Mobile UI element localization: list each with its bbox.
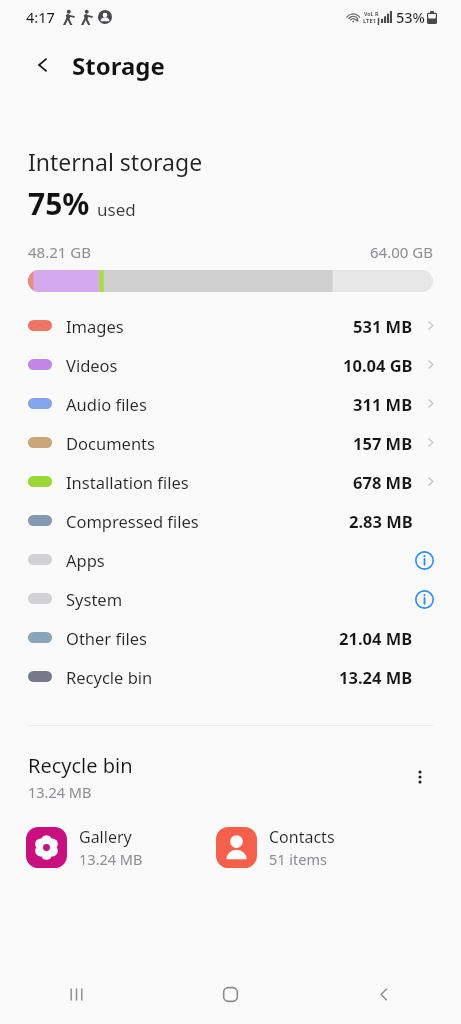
button[interactable]: Home bbox=[153, 964, 307, 1024]
staticText: Videos bbox=[66, 354, 118, 376]
staticText: R bbox=[375, 10, 379, 17]
button[interactable]: Gallery bbox=[26, 826, 216, 869]
button[interactable]: Contacts bbox=[216, 826, 343, 869]
staticText: used bbox=[97, 198, 136, 221]
button[interactable]: Images bbox=[0, 306, 461, 345]
staticText: 678 MB bbox=[353, 471, 413, 493]
button[interactable]: Recycle bin bbox=[0, 657, 461, 696]
staticText: 53% bbox=[396, 7, 425, 27]
button[interactable]: Back bbox=[26, 48, 60, 82]
staticText: 75% bbox=[28, 183, 90, 224]
staticText: 51 items bbox=[269, 849, 328, 869]
button[interactable]: Installation files bbox=[0, 462, 461, 501]
staticText: Compressed files bbox=[66, 510, 199, 532]
staticText: Recycle bin bbox=[66, 666, 153, 688]
staticText: 13.24 MB bbox=[339, 666, 413, 688]
button[interactable]: Other files bbox=[0, 618, 461, 657]
button[interactable]: Compressed files bbox=[0, 501, 461, 540]
staticText: 4:17 bbox=[26, 7, 55, 27]
button[interactable]: Recent apps bbox=[0, 964, 153, 1024]
button[interactable]: Back bbox=[307, 964, 461, 1024]
staticText: Audio files bbox=[66, 393, 147, 415]
staticText: Gallery bbox=[79, 826, 132, 848]
button[interactable]: More options bbox=[401, 758, 439, 796]
staticText: Installation files bbox=[66, 471, 189, 493]
staticText: 2.83 MB bbox=[349, 510, 413, 532]
staticText: 157 MB bbox=[353, 432, 413, 454]
button[interactable]: Apps bbox=[0, 540, 461, 579]
staticText: 10.04 GB bbox=[343, 354, 413, 376]
staticText: Images bbox=[66, 315, 124, 337]
staticText: Internal storage bbox=[28, 146, 203, 177]
button[interactable]: Videos bbox=[0, 345, 461, 384]
staticText: 531 MB bbox=[353, 315, 413, 337]
staticText: 311 MB bbox=[353, 393, 413, 415]
button[interactable]: About System bbox=[411, 586, 437, 612]
staticText: Contacts bbox=[269, 826, 335, 848]
staticText: 64.00 GB bbox=[370, 242, 433, 262]
staticText: 48.21 GB bbox=[28, 242, 91, 262]
staticText: Storage bbox=[72, 49, 165, 82]
staticText: Apps bbox=[66, 549, 105, 571]
staticText: 21.04 MB bbox=[339, 627, 413, 649]
staticText: LTE1 bbox=[363, 17, 377, 25]
button[interactable]: Documents bbox=[0, 423, 461, 462]
button[interactable]: System bbox=[0, 579, 461, 618]
button[interactable]: Audio files bbox=[0, 384, 461, 423]
button[interactable]: About Apps bbox=[411, 547, 437, 573]
staticText: 13.24 MB bbox=[28, 782, 92, 802]
staticText: Documents bbox=[66, 432, 155, 454]
staticText: Recycle bin bbox=[28, 752, 133, 779]
staticText: 13.24 MB bbox=[79, 849, 143, 869]
staticText: System bbox=[66, 588, 123, 610]
staticText: VoL bbox=[364, 10, 374, 17]
staticText: Other files bbox=[66, 627, 147, 649]
